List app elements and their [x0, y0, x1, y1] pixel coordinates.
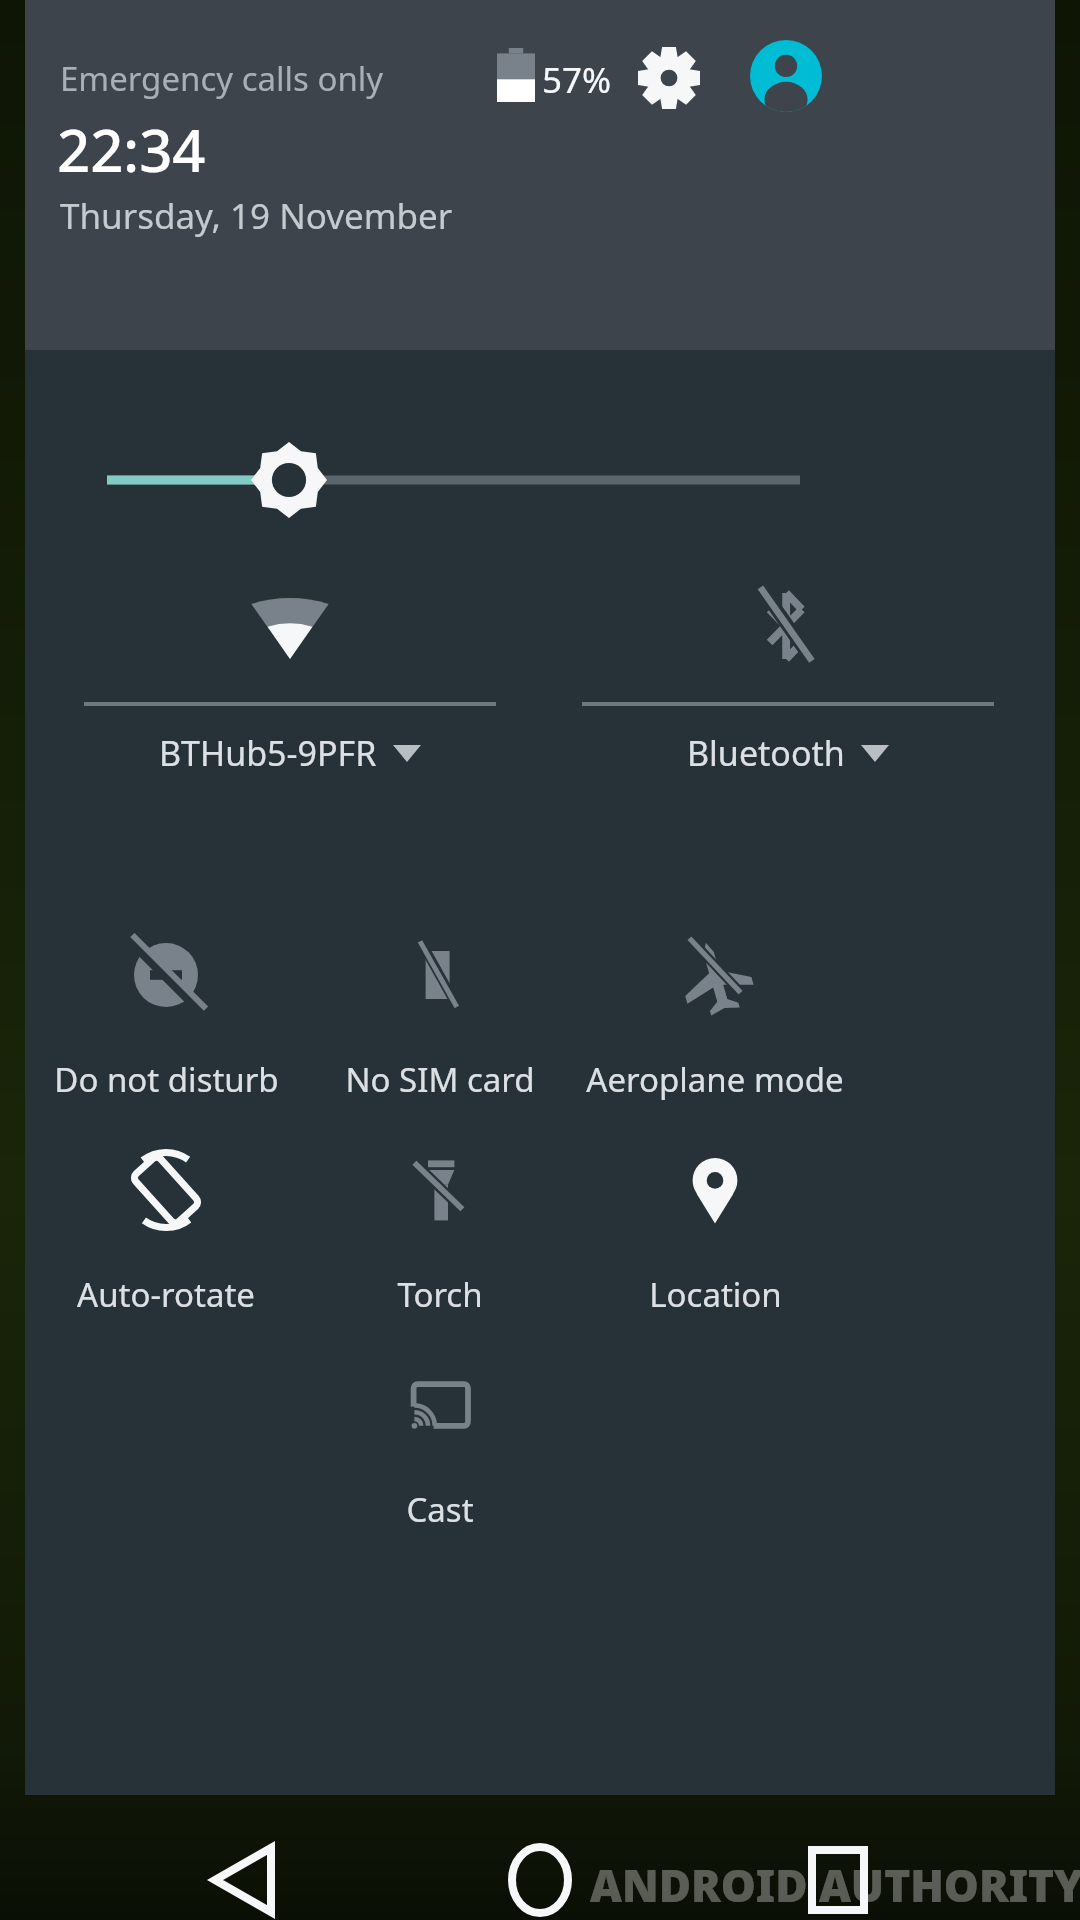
button[interactable]: Bluetooth — [578, 580, 998, 776]
button[interactable]: Settings — [623, 32, 715, 124]
button[interactable]: No SIM card — [280, 935, 600, 1102]
button[interactable]: Recent apps — [778, 1820, 898, 1920]
staticText: Thursday, 19 November — [60, 192, 453, 240]
staticText: Do not disturb — [54, 1057, 279, 1102]
button[interactable]: Do not disturb — [6, 935, 326, 1102]
staticText: Cast — [406, 1487, 474, 1532]
staticText: Bluetooth — [687, 730, 845, 776]
staticText: No SIM card — [345, 1057, 535, 1102]
button[interactable]: Back — [183, 1820, 303, 1920]
button[interactable]: Home — [480, 1820, 600, 1920]
button[interactable]: Wi-Fi — [80, 580, 500, 776]
staticText: Aeroplane mode — [586, 1057, 844, 1102]
staticText: BTHub5-9PFR — [159, 730, 377, 776]
staticText: Location — [649, 1272, 782, 1317]
button[interactable]: Auto-rotate — [6, 1150, 326, 1317]
button[interactable]: Cast — [280, 1365, 600, 1532]
staticText: ANDROID AUTHORITY — [590, 1855, 1080, 1915]
button[interactable]: Torch — [280, 1150, 600, 1317]
staticText: Torch — [397, 1272, 483, 1317]
staticText: Auto-rotate — [77, 1272, 255, 1317]
button[interactable]: Brightness — [25, 435, 1055, 525]
staticText: Emergency calls only — [60, 56, 384, 101]
button[interactable]: Location — [555, 1150, 875, 1317]
staticText: 22:34 — [57, 110, 206, 189]
staticText: 57% — [542, 56, 612, 104]
button[interactable]: User account — [738, 28, 834, 124]
button[interactable]: Aeroplane mode — [555, 935, 875, 1102]
